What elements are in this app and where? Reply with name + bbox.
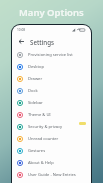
button[interactable]: Unread counter	[12, 133, 91, 145]
button[interactable]: About & Help	[12, 157, 91, 169]
staticText: Unread counter	[28, 136, 86, 142]
staticText: Dock	[28, 88, 86, 94]
staticText: 10:08	[17, 28, 26, 32]
staticText: Gestures	[28, 148, 86, 154]
staticText: Many Options	[19, 6, 84, 19]
button[interactable]: Dock	[12, 85, 91, 97]
button[interactable]: Drawer	[12, 73, 91, 85]
button[interactable]: User Guide - New Entries	[12, 169, 91, 181]
staticText: Security & privacy	[28, 124, 79, 130]
button[interactable]: Provisioning service list	[12, 49, 91, 61]
staticText: About & Help	[28, 160, 86, 166]
button[interactable]: Gestures	[12, 145, 91, 157]
button[interactable]: Theme & UI	[12, 109, 91, 121]
button[interactable]: Sidebar	[12, 97, 91, 109]
staticText: Drawer	[28, 76, 86, 82]
button[interactable]: Back	[16, 36, 27, 47]
staticText: Provisioning service list	[28, 52, 86, 58]
staticText: User Guide - New Entries	[28, 172, 86, 178]
staticText: Sidebar	[28, 100, 86, 106]
button[interactable]: Security & privacy	[12, 121, 91, 133]
staticText: Settings	[30, 38, 55, 46]
button[interactable]: Desktop	[12, 61, 91, 73]
staticText: Theme & UI	[28, 112, 86, 118]
staticText: Desktop	[28, 64, 86, 70]
